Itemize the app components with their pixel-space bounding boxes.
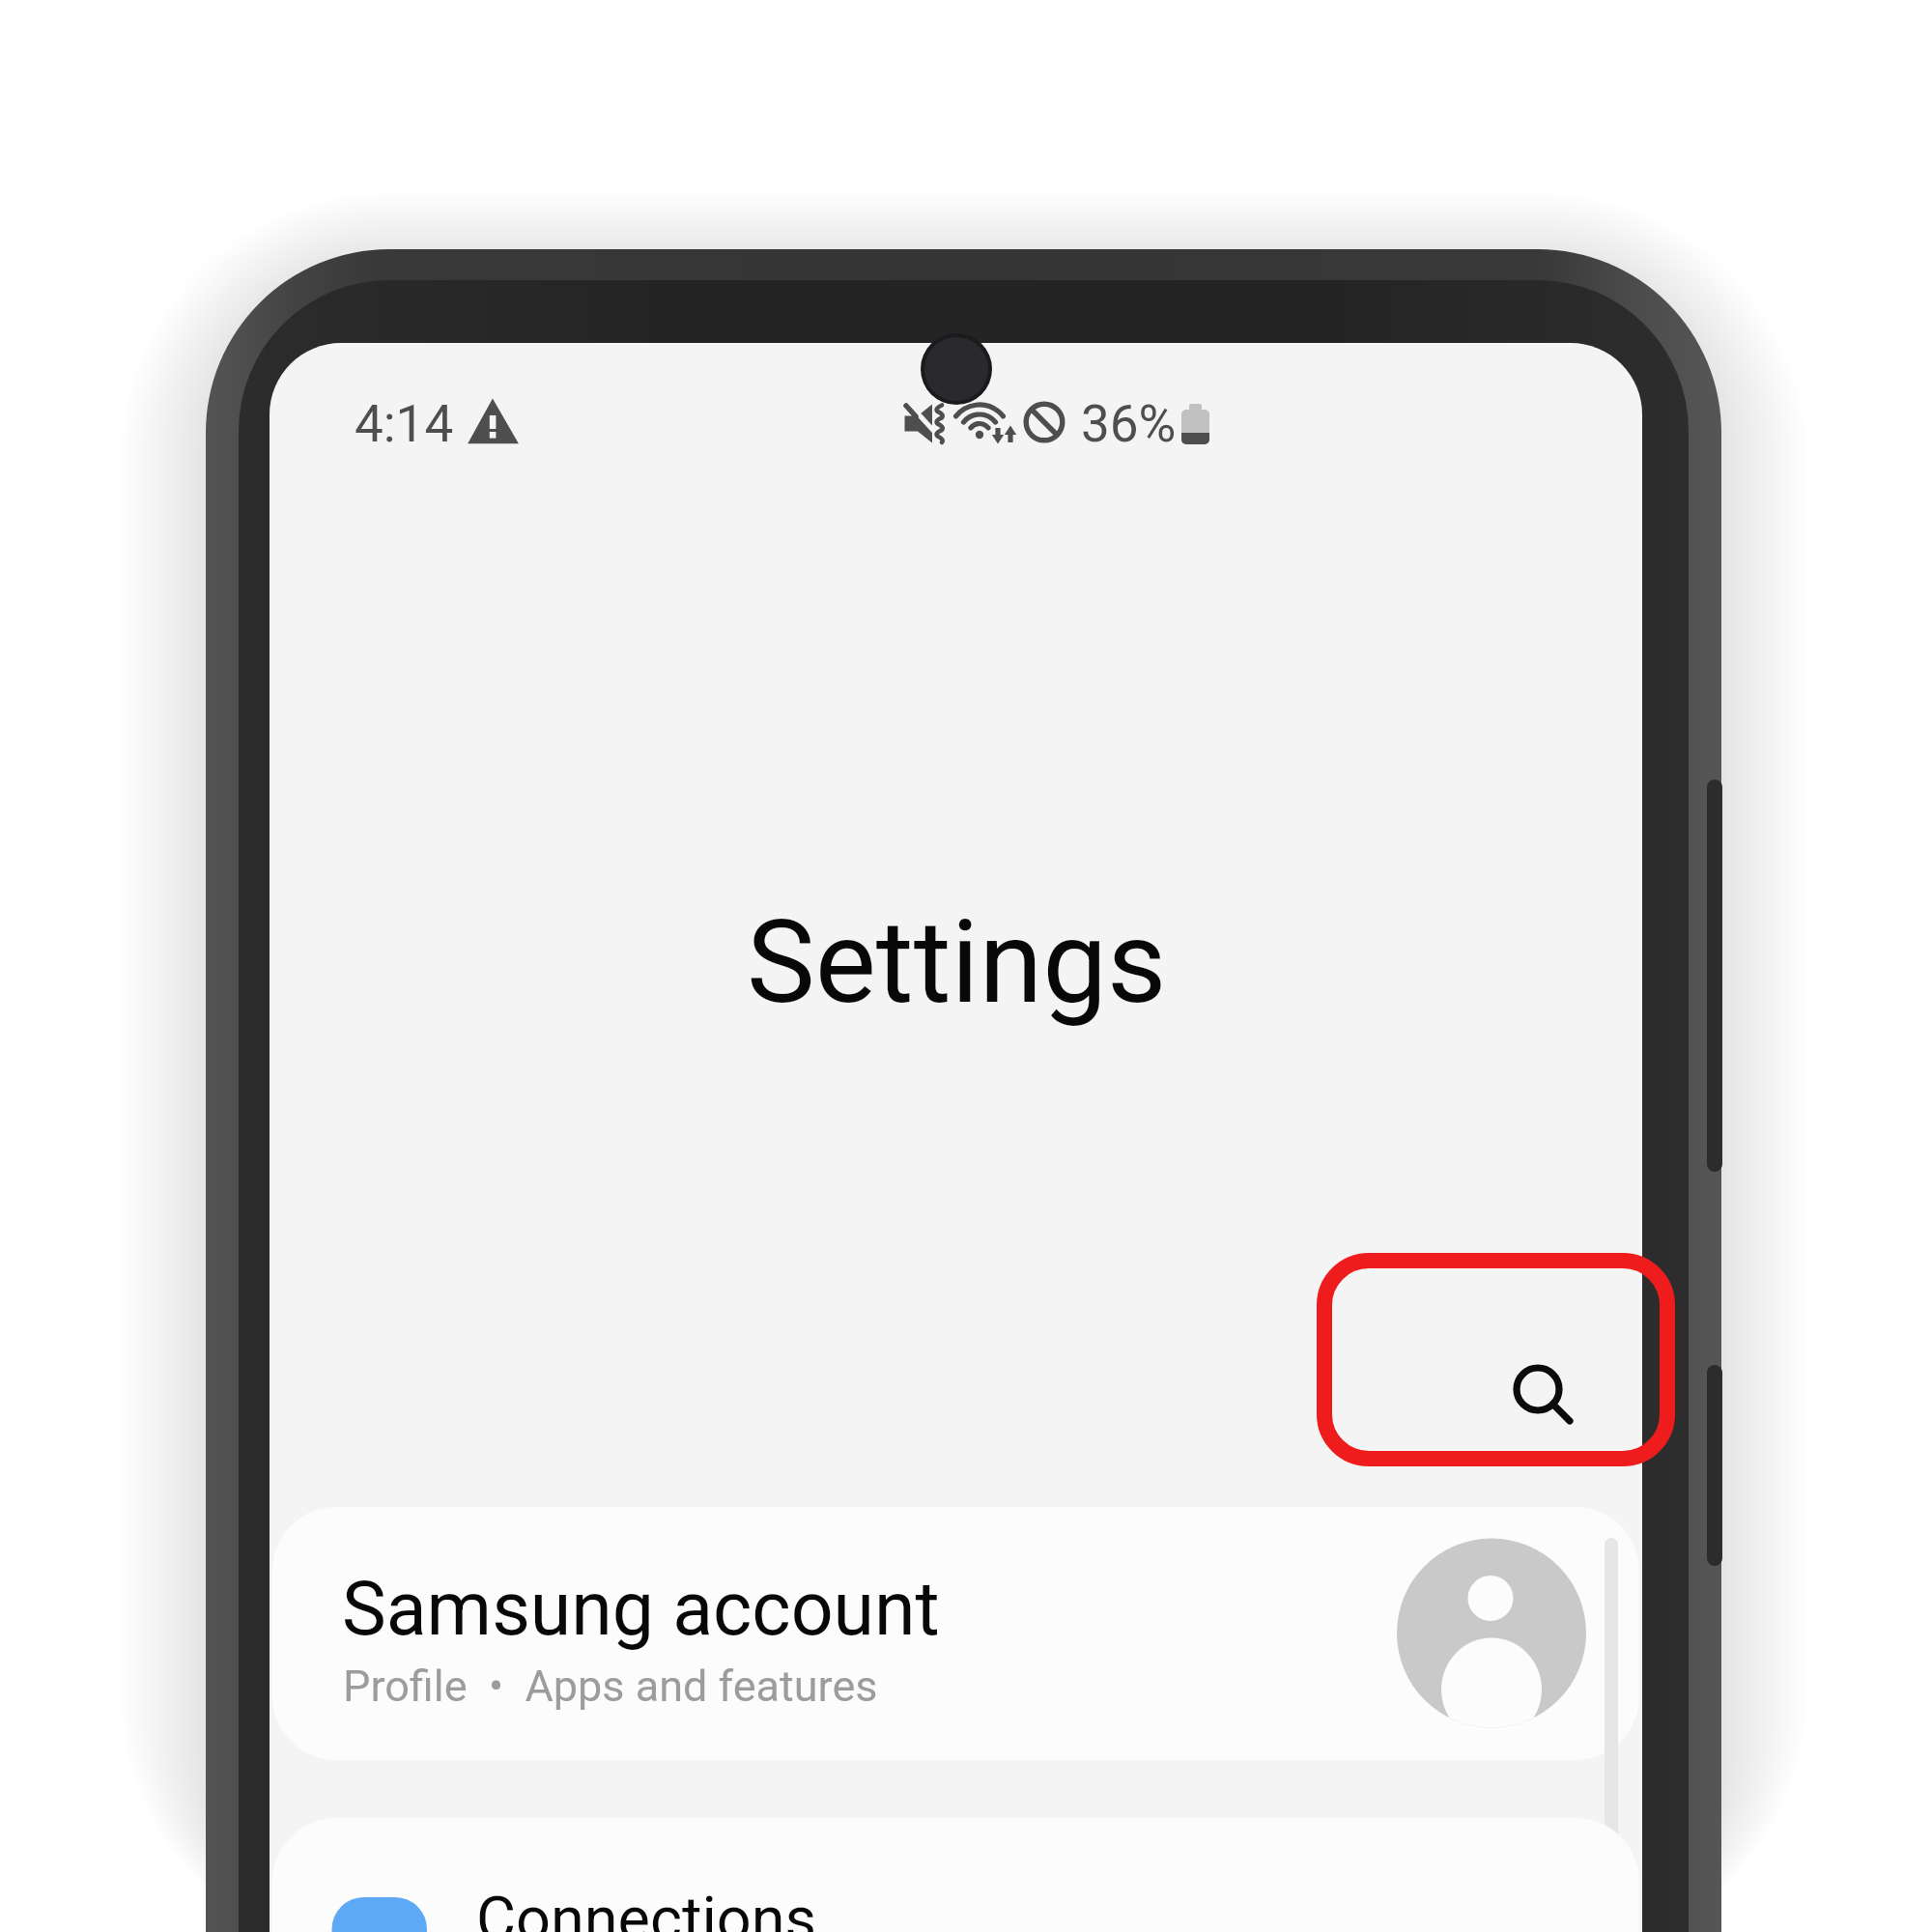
button[interactable]: Search xyxy=(1316,1253,1677,1466)
staticText: Profile • Apps and features xyxy=(343,1661,878,1712)
staticText: Samsung account xyxy=(342,1566,940,1653)
staticText: 36% xyxy=(1081,394,1177,454)
button[interactable]: Samsung account xyxy=(272,1507,1639,1760)
button[interactable]: Connections xyxy=(272,1818,1639,1932)
staticText: 4:14 xyxy=(355,394,454,454)
staticText: Connections xyxy=(476,1884,817,1932)
staticText: Settings xyxy=(747,895,1167,1030)
